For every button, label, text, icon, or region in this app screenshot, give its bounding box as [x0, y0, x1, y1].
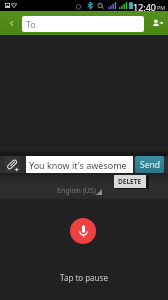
- button[interactable]: Microphone: [70, 218, 96, 244]
- button[interactable]: To: [22, 16, 144, 32]
- button[interactable]: You know it's awesome: [26, 156, 133, 173]
- staticText: 12:40: [133, 1, 157, 12]
- staticText: Send: [140, 159, 160, 171]
- button[interactable]: Add contact: [146, 11, 168, 35]
- button[interactable]: Attach: [5, 156, 20, 173]
- staticText: DELETE: [118, 177, 142, 186]
- staticText: English (US): [57, 186, 96, 196]
- staticText: To: [26, 18, 36, 30]
- staticText: PM: [157, 4, 166, 11]
- staticText: You know it's awesome: [29, 159, 127, 171]
- button[interactable]: DELETE: [114, 175, 146, 188]
- button[interactable]: Send: [135, 156, 164, 173]
- button[interactable]: Back: [0, 11, 22, 35]
- staticText: Tap to pause: [0, 272, 168, 283]
